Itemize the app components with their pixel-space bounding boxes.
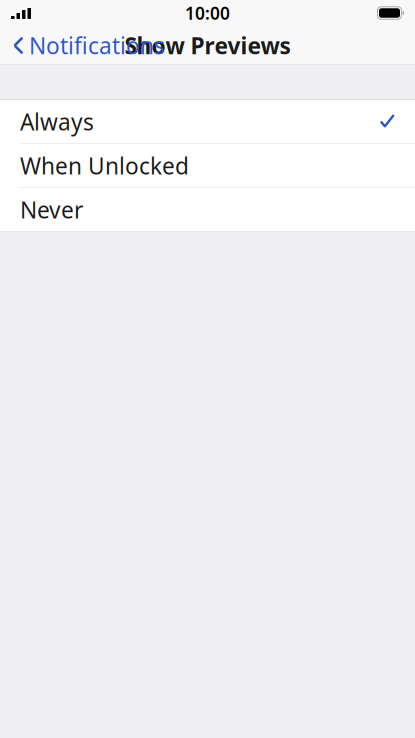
button[interactable]: Never: [0, 188, 415, 232]
staticText: Always: [20, 107, 94, 137]
button[interactable]: When Unlocked: [0, 144, 415, 188]
button[interactable]: Notifications: [0, 23, 173, 67]
button[interactable]: Always: [0, 100, 415, 144]
staticText: Never: [20, 195, 83, 225]
staticText: Notifications: [29, 30, 165, 60]
staticText: When Unlocked: [20, 151, 189, 181]
staticText: Show Previews: [124, 30, 290, 60]
staticText: 10:00: [185, 1, 230, 24]
